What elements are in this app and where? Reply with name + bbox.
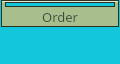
staticText: Order <box>42 8 78 26</box>
button[interactable]: Progress <box>2 1 118 26</box>
